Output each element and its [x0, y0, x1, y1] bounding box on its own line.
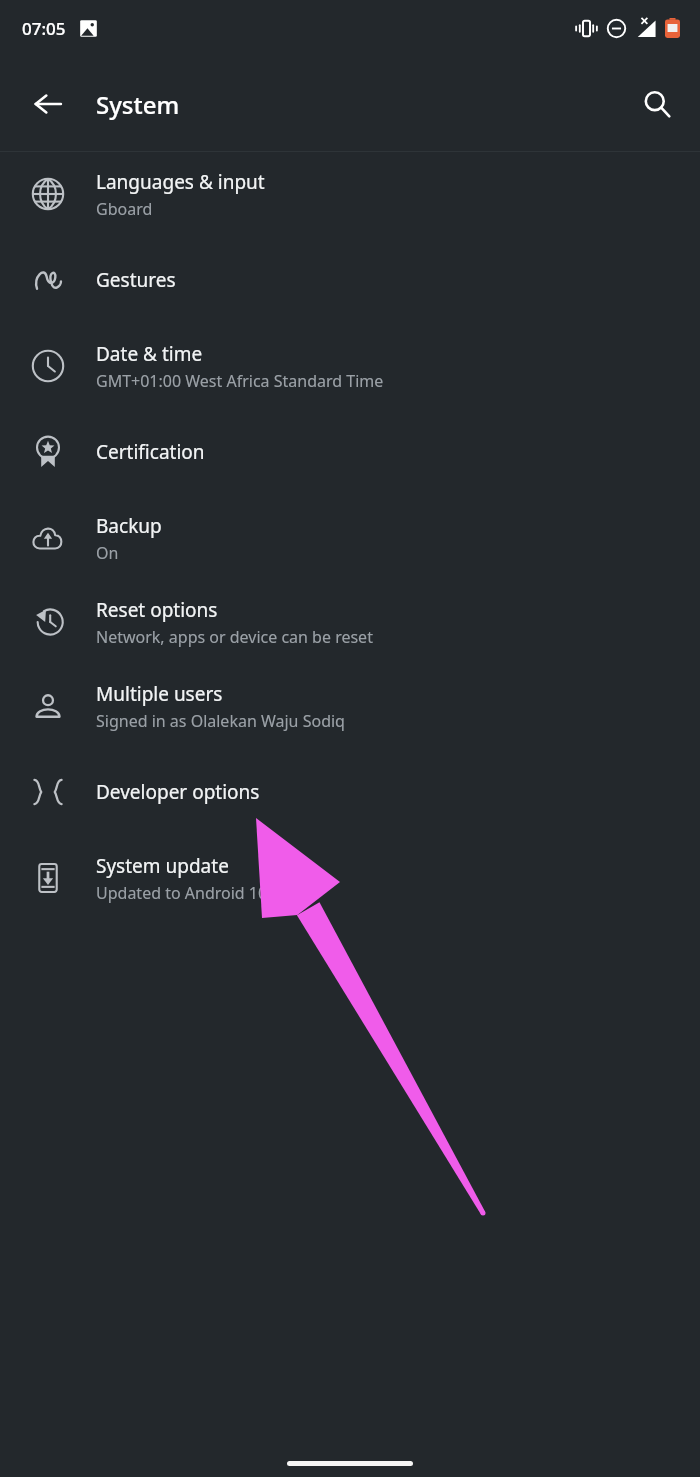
staticText: Certification	[96, 439, 205, 465]
staticText: Date & time	[96, 341, 203, 367]
staticText: Languages & input	[96, 169, 265, 195]
button[interactable]: System update	[0, 836, 700, 920]
staticText: System	[96, 88, 180, 121]
button[interactable]: Developer options	[0, 748, 700, 836]
staticText: Backup	[96, 513, 162, 539]
staticText: Multiple users	[96, 681, 223, 707]
button[interactable]: Reset options	[0, 580, 700, 664]
staticText: On	[96, 542, 119, 564]
button[interactable]: Certification	[0, 408, 700, 496]
staticText: Reset options	[96, 597, 218, 623]
button[interactable]: Search	[614, 56, 700, 152]
button[interactable]: Multiple users	[0, 664, 700, 748]
staticText: Gboard	[96, 198, 153, 220]
button[interactable]: Gestures	[0, 236, 700, 324]
staticText: System update	[96, 853, 229, 879]
button[interactable]: Back	[0, 56, 96, 152]
button[interactable]: Backup	[0, 496, 700, 580]
staticText: 07:05	[22, 17, 66, 40]
button[interactable]: Date & time	[0, 324, 700, 408]
staticText: Network, apps or device can be reset	[96, 626, 373, 648]
staticText: Developer options	[96, 779, 260, 805]
staticText: Signed in as Olalekan Waju Sodiq	[96, 710, 345, 732]
staticText: Gestures	[96, 267, 176, 293]
button[interactable]: Languages & input	[0, 152, 700, 236]
staticText: GMT+01:00 West Africa Standard Time	[96, 370, 384, 392]
staticText: Updated to Android 10	[96, 882, 268, 904]
